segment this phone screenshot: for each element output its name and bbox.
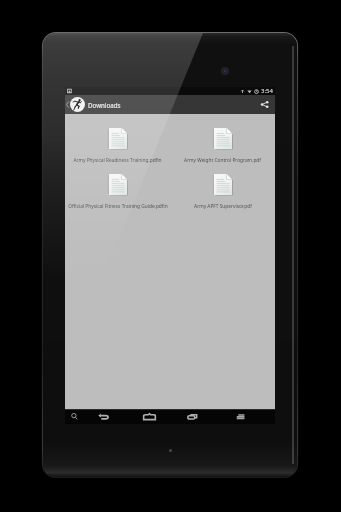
staticText: Official Physical Fitness Training Guide…: [68, 203, 168, 210]
button[interactable]: Recents: [183, 409, 201, 424]
staticText: Army APFT Supervisor.pdf: [194, 203, 252, 210]
staticText: Downloads: [88, 101, 121, 109]
button[interactable]: Home: [140, 409, 158, 424]
button[interactable]: Army Weight Control Program.pdf: [170, 128, 275, 174]
staticText: Army Physical Readiness Training.pdfin: [73, 157, 162, 164]
staticText: 3:54: [261, 87, 273, 95]
button[interactable]: Back: [94, 409, 112, 424]
button[interactable]: Menu: [231, 409, 249, 424]
button[interactable]: Share: [253, 95, 275, 114]
button[interactable]: Search: [65, 409, 83, 424]
button[interactable]: Army Physical Readiness Training.pdfin: [65, 128, 170, 174]
button[interactable]: Official Physical Fitness Training Guide…: [65, 174, 170, 220]
button[interactable]: Navigate up: [65, 95, 86, 114]
staticText: Army Weight Control Program.pdf: [184, 157, 261, 164]
button[interactable]: Army APFT Supervisor.pdf: [170, 174, 275, 220]
